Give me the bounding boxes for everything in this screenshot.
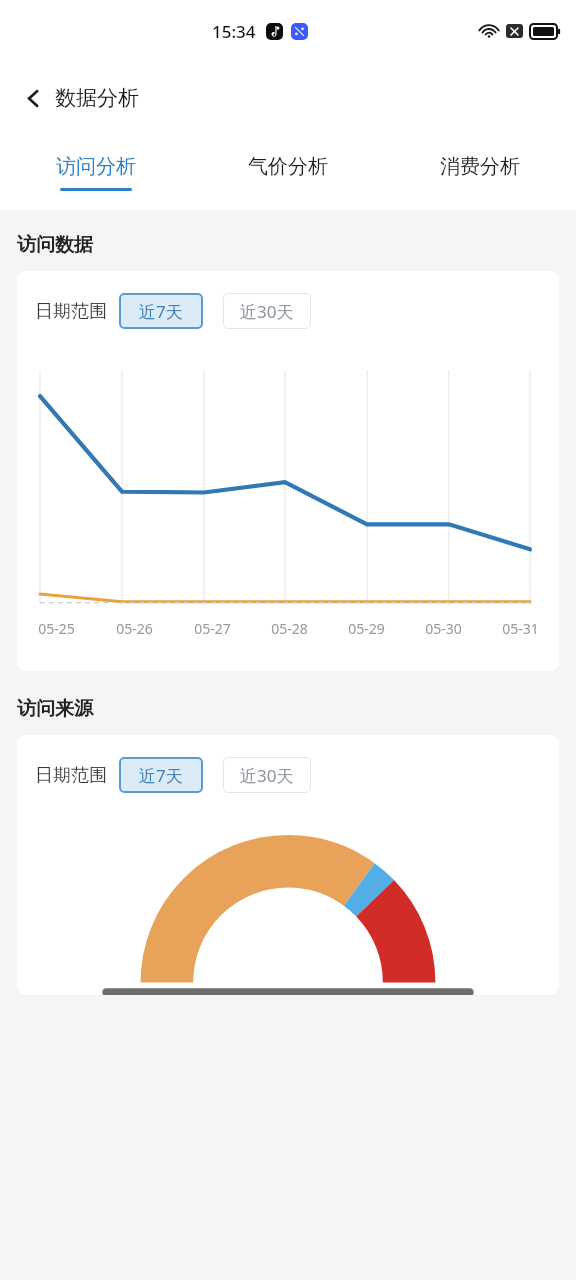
staticText: 数据分析: [55, 85, 139, 111]
button[interactable]: 近7天: [119, 757, 203, 793]
staticText: 气价分析: [248, 154, 328, 179]
staticText: 访问分析: [56, 154, 136, 179]
staticText: 05-26: [116, 619, 153, 638]
button[interactable]: 消费分析: [384, 134, 576, 210]
staticText: 05-30: [425, 619, 462, 638]
button[interactable]: Back: [16, 81, 50, 115]
staticText: 05-31: [502, 619, 539, 638]
staticText: 日期范围: [35, 300, 107, 323]
staticText: 05-28: [271, 619, 308, 638]
staticText: 访问来源: [17, 697, 93, 721]
button[interactable]: 近30天: [223, 293, 311, 329]
button[interactable]: 访问分析: [0, 134, 192, 210]
staticText: 日期范围: [35, 764, 107, 787]
button[interactable]: 近7天: [119, 293, 203, 329]
staticText: 消费分析: [440, 154, 520, 179]
button[interactable]: 气价分析: [192, 134, 384, 210]
staticText: 05-29: [348, 619, 385, 638]
staticText: 近30天: [240, 764, 294, 787]
staticText: 近30天: [240, 300, 294, 323]
staticText: 15:34: [212, 20, 256, 43]
staticText: 近7天: [139, 300, 183, 323]
staticText: 访问数据: [17, 233, 93, 257]
staticText: 近7天: [139, 764, 183, 787]
staticText: 05-25: [38, 619, 75, 638]
button[interactable]: 近30天: [223, 757, 311, 793]
staticText: 05-27: [194, 619, 231, 638]
